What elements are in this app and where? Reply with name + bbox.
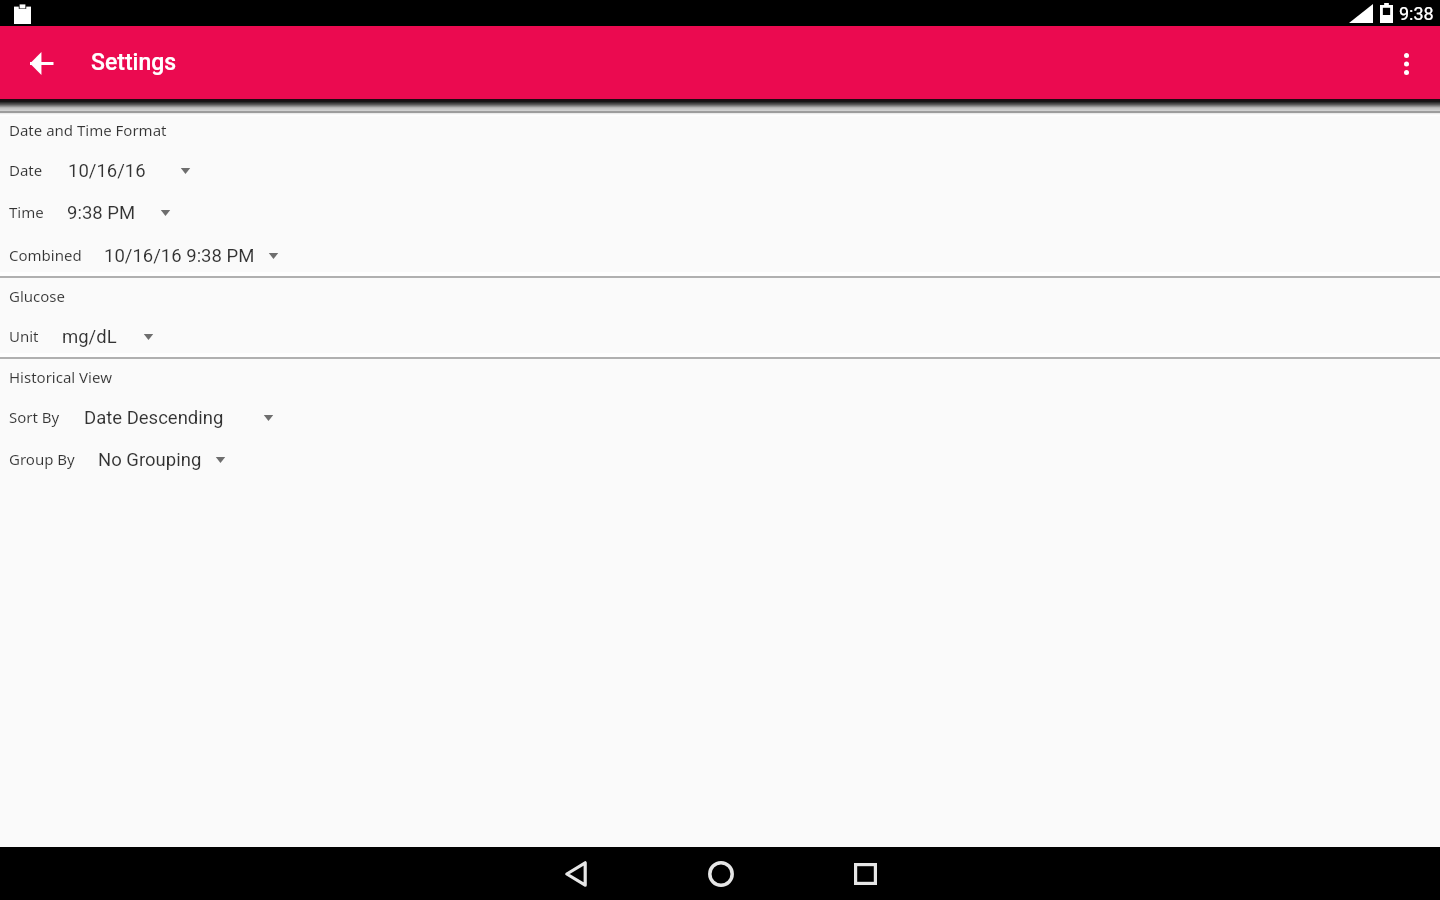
staticText: Time: [9, 202, 44, 222]
staticText: No Grouping: [98, 449, 202, 471]
button[interactable]: Home: [694, 847, 747, 900]
staticText: Date Descending: [84, 407, 224, 429]
staticText: Sort By: [9, 407, 60, 427]
button[interactable]: Time: [0, 192, 1440, 234]
staticText: 9:38 PM: [67, 202, 136, 224]
button[interactable]: Group By: [0, 439, 1440, 481]
staticText: Glucose: [9, 286, 65, 306]
button[interactable]: Combined: [0, 234, 1440, 276]
button[interactable]: Recents: [839, 847, 892, 900]
staticText: Historical View: [9, 367, 112, 387]
staticText: Date: [9, 160, 43, 180]
staticText: 9:38: [1399, 3, 1434, 24]
staticText: Date and Time Format: [9, 120, 167, 140]
button[interactable]: Back: [549, 847, 602, 900]
button[interactable]: Unit: [0, 316, 1440, 357]
button[interactable]: Date: [0, 150, 1440, 192]
staticText: Unit: [9, 326, 39, 346]
button[interactable]: More options: [1385, 43, 1427, 85]
staticText: 10/16/16 9:38 PM: [104, 245, 255, 267]
staticText: Settings: [91, 49, 177, 76]
button[interactable]: Sort By: [0, 397, 1440, 439]
button[interactable]: Navigate up: [20, 42, 62, 84]
staticText: Group By: [9, 449, 75, 469]
staticText: Combined: [9, 245, 82, 265]
staticText: 10/16/16: [68, 160, 146, 182]
staticText: mg/dL: [62, 326, 117, 348]
